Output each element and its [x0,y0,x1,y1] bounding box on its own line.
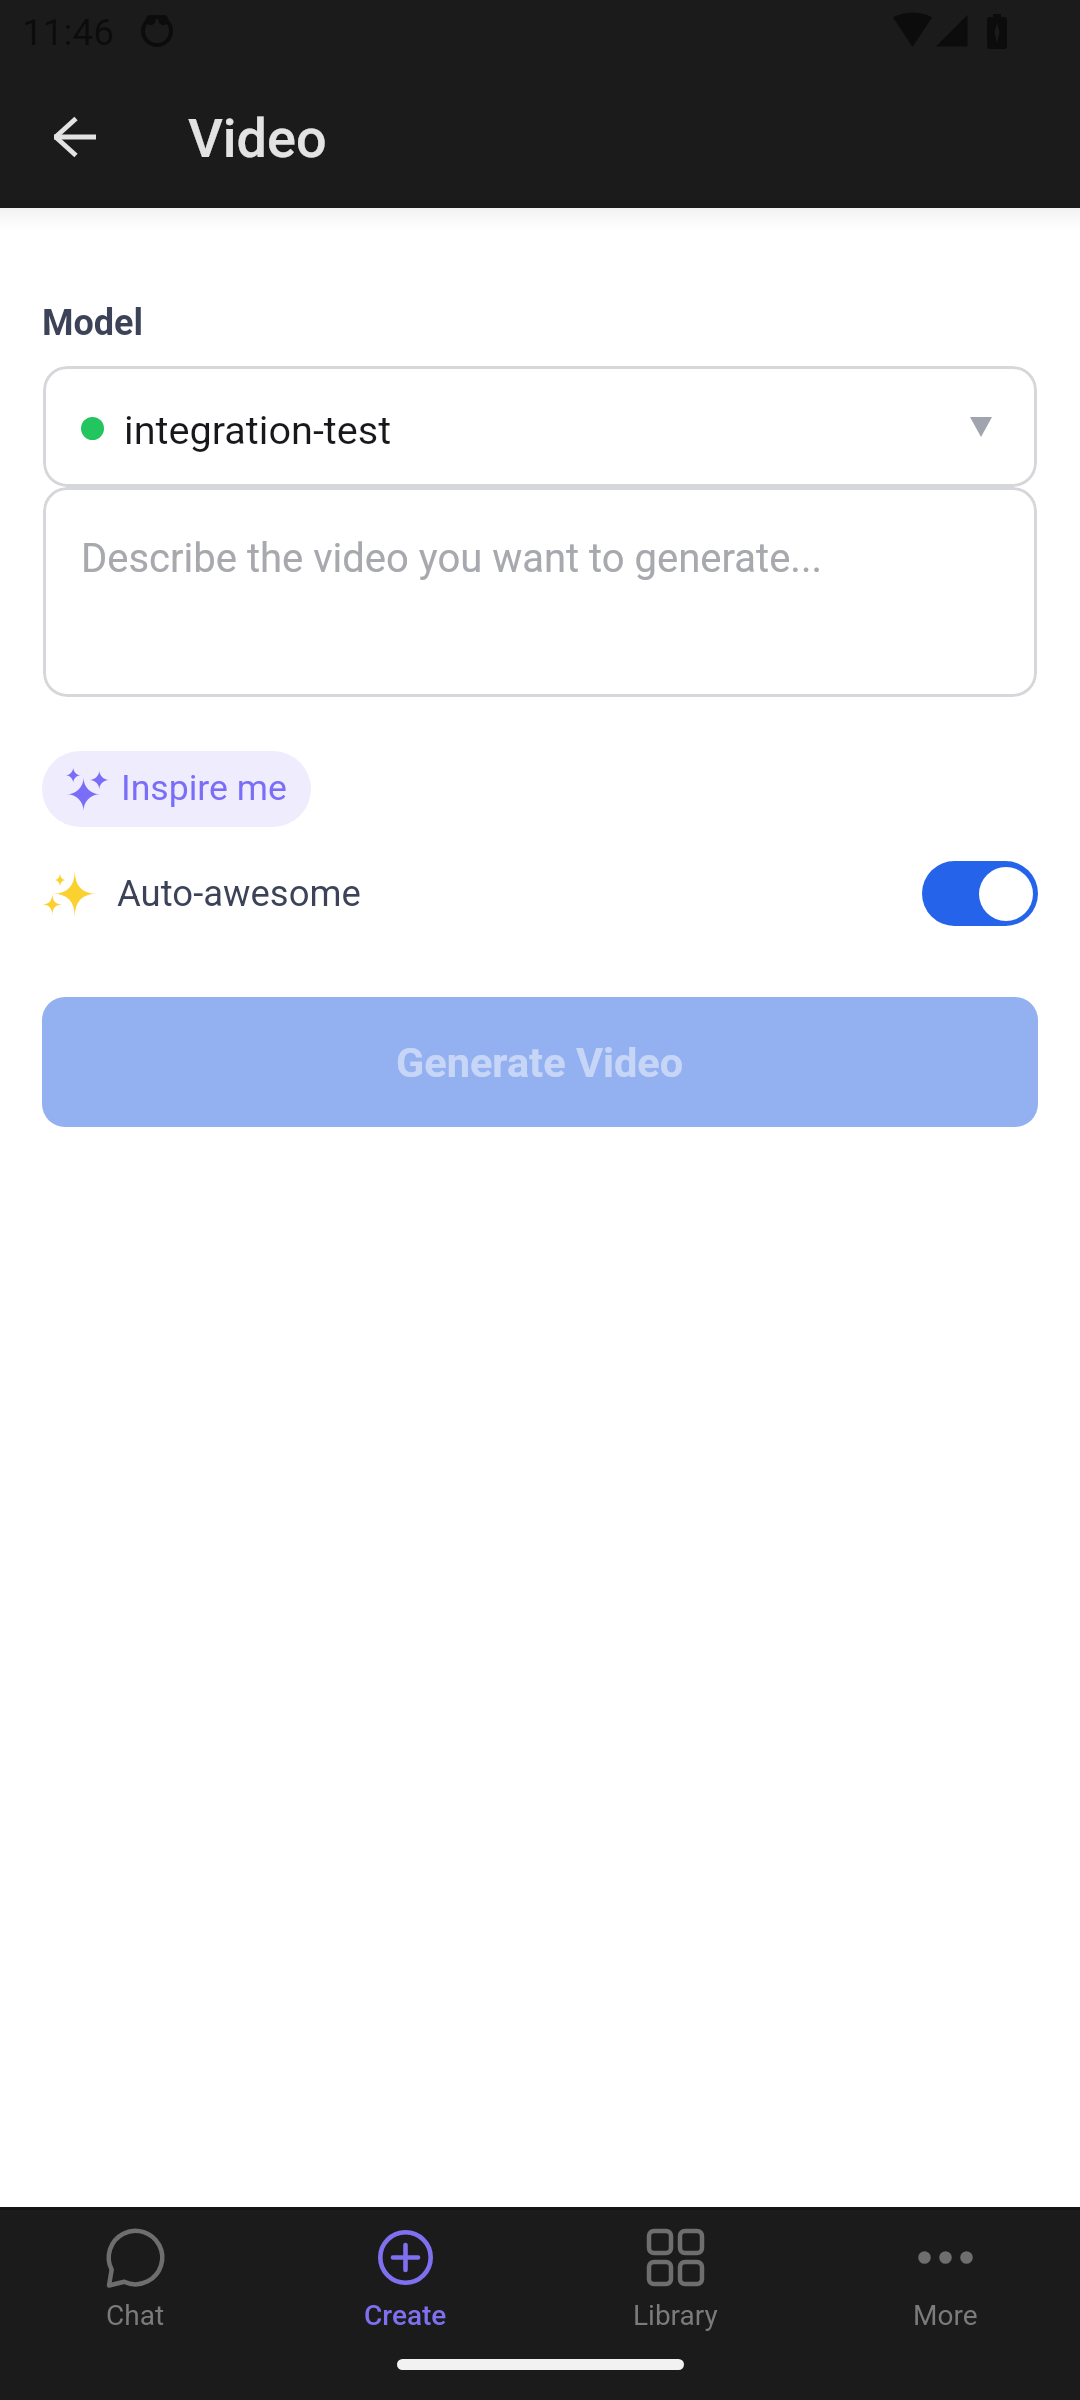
staticText: Generate Video [396,1038,684,1087]
staticText: integration-test [124,407,392,453]
button[interactable]: Back [27,88,121,182]
button[interactable]: Inspire me [42,751,311,827]
staticText: Describe the video you want to generate.… [81,535,822,582]
staticText: Auto-awesome [117,872,361,915]
staticText: Create [364,2299,447,2332]
staticText: 11:46 [22,11,115,54]
button[interactable]: Describe the video you want to generate.… [43,487,1037,697]
button[interactable]: Auto-awesome toggle [922,861,1038,926]
staticText: Inspire me [121,767,287,809]
button[interactable]: Generate Video [42,997,1038,1127]
button[interactable]: Library [540,2207,810,2332]
button[interactable]: integration-test [43,366,1037,487]
staticText: Video [188,107,327,170]
button[interactable]: More [810,2207,1080,2332]
staticText: More [913,2299,978,2332]
button[interactable]: Chat [0,2207,270,2332]
staticText: Chat [106,2299,165,2332]
staticText: Library [633,2299,718,2332]
staticText: Model [42,302,144,344]
button[interactable]: Create [270,2207,540,2332]
